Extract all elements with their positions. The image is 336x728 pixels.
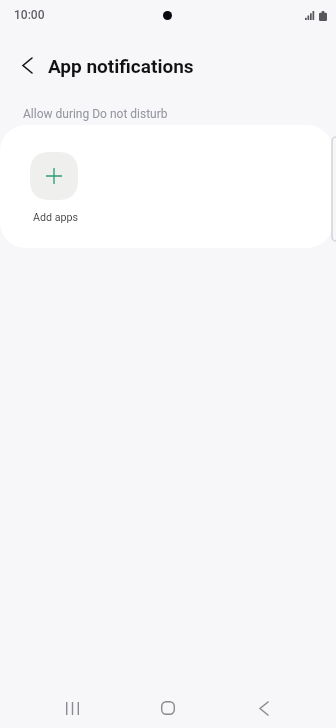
button[interactable]: Navigate up <box>5 43 50 88</box>
staticText: Allow during Do not disturb <box>23 107 168 121</box>
staticText: Add apps <box>33 211 79 224</box>
button[interactable]: Home <box>144 684 192 728</box>
button[interactable]: Recent apps <box>48 684 96 728</box>
staticText: App notifications <box>48 55 194 77</box>
button[interactable]: Back <box>240 684 288 728</box>
staticText: 10:00 <box>14 8 45 22</box>
button[interactable]: Add apps <box>18 140 90 235</box>
